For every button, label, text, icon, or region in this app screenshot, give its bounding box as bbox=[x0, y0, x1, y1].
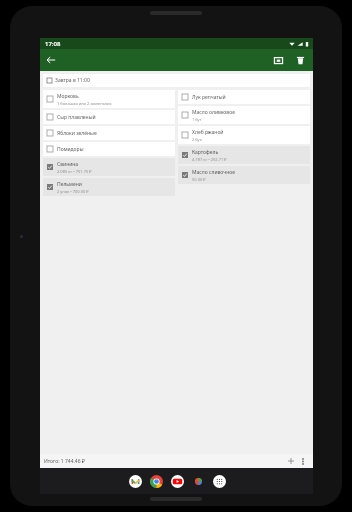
button[interactable]: Масло оливковое bbox=[178, 106, 310, 124]
button[interactable]: Back bbox=[40, 49, 62, 71]
staticText: 2 бух bbox=[192, 137, 202, 142]
button[interactable]: Помидоры bbox=[43, 142, 175, 156]
staticText: 1 большая или 2 маленьких bbox=[57, 101, 112, 106]
button[interactable]: Delete bbox=[289, 49, 311, 71]
button[interactable]: Морковь bbox=[43, 90, 175, 108]
button[interactable]: Свинина bbox=[43, 158, 175, 176]
button[interactable]: Яблоки зелёные bbox=[43, 126, 175, 140]
staticText: Сыр плавленый bbox=[57, 114, 96, 121]
button[interactable]: Хлеб ржаной bbox=[178, 126, 310, 144]
staticText: 50.00 ₽ bbox=[192, 177, 206, 182]
button[interactable]: Add item bbox=[285, 455, 297, 467]
staticText: Хлеб ржаной bbox=[192, 129, 224, 136]
button[interactable]: Сыр плавленый bbox=[43, 110, 175, 124]
button[interactable]: Shopping cart bbox=[267, 49, 289, 71]
staticText: 4.787 кг • 292.71 ₽ bbox=[192, 157, 227, 162]
button[interactable]: More options bbox=[297, 455, 309, 467]
button[interactable]: Масло сливочное bbox=[178, 166, 310, 184]
staticText: Масло оливковое bbox=[192, 109, 235, 116]
staticText: 2 упак • 700.00 ₽ bbox=[57, 189, 89, 194]
staticText: Свинина bbox=[57, 161, 79, 168]
staticText: Морковь bbox=[57, 93, 79, 100]
staticText: 1 бут bbox=[192, 117, 202, 122]
button[interactable]: Картофель bbox=[178, 146, 310, 164]
button[interactable]: Gmail bbox=[128, 474, 142, 488]
staticText: Яблоки зелёные bbox=[57, 130, 97, 137]
staticText: Лук репчатый bbox=[192, 94, 226, 101]
button[interactable]: Лук репчатый bbox=[178, 90, 310, 104]
staticText: Масло сливочное bbox=[192, 169, 235, 176]
staticText: Картофель bbox=[192, 149, 219, 156]
staticText: 17:08 bbox=[45, 40, 61, 48]
button[interactable]: Завтра в 11:00 bbox=[43, 74, 310, 87]
button[interactable]: Chrome bbox=[149, 474, 163, 488]
button[interactable]: Photos bbox=[191, 474, 205, 488]
button[interactable]: All apps bbox=[212, 474, 226, 488]
staticText: Итого: 1 744.46 ₽ bbox=[44, 458, 85, 465]
button[interactable]: Пельмени bbox=[43, 178, 175, 196]
staticText: Помидоры bbox=[57, 146, 84, 153]
staticText: Пельмени bbox=[57, 181, 82, 188]
button[interactable]: YouTube bbox=[170, 474, 184, 488]
staticText: 2.085 кг • 701.75 ₽ bbox=[57, 169, 92, 174]
staticText: Завтра в 11:00 bbox=[55, 77, 90, 84]
